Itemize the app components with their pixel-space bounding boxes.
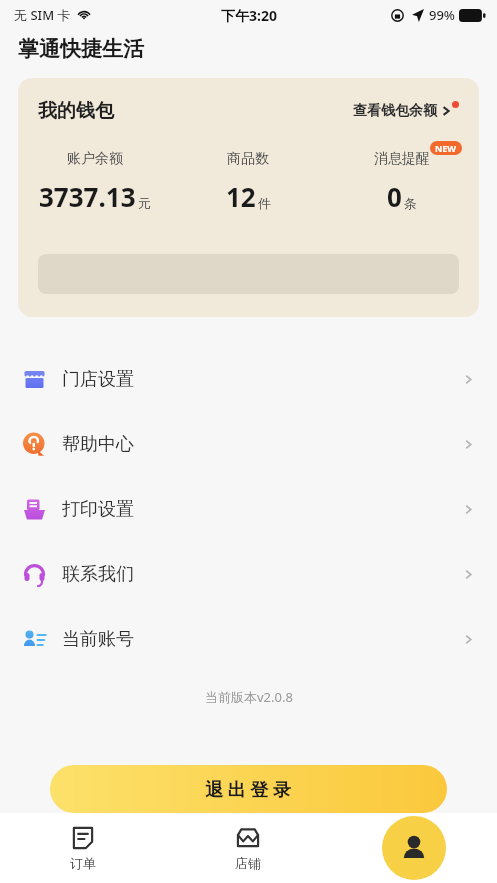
staticText: 联系我们 bbox=[62, 563, 134, 586]
staticText: 掌通快捷生活 bbox=[18, 36, 144, 62]
staticText: 元 bbox=[138, 195, 151, 211]
staticText: 当前版本v2.0.8 bbox=[205, 688, 293, 706]
staticText: 件 bbox=[258, 195, 271, 211]
staticText: 无 SIM 卡 bbox=[14, 6, 71, 24]
staticText: 条 bbox=[404, 195, 417, 211]
button[interactable]: 联系我们 bbox=[0, 542, 497, 607]
button[interactable]: 查看钱包余额 bbox=[349, 98, 463, 124]
staticText: 3737.13 bbox=[39, 179, 136, 214]
staticText: 店铺 bbox=[235, 855, 261, 871]
staticText: 下午3:20 bbox=[221, 6, 277, 25]
button[interactable]: 帮助中心 bbox=[0, 412, 497, 477]
staticText: 99% bbox=[429, 6, 455, 24]
staticText: 12 bbox=[226, 179, 256, 214]
staticText: 0 bbox=[387, 179, 402, 214]
staticText: 消息提醒 bbox=[374, 150, 430, 168]
button[interactable]: 退 出 登 录 bbox=[50, 765, 447, 813]
button[interactable]: 订单 bbox=[0, 813, 165, 883]
button[interactable]: 我的钱包 bbox=[18, 78, 479, 317]
button[interactable]: 我的 bbox=[382, 816, 446, 880]
staticText: NEW bbox=[435, 142, 457, 154]
staticText: 我的钱包 bbox=[38, 99, 114, 123]
staticText: 门店设置 bbox=[62, 368, 134, 391]
staticText: 打印设置 bbox=[62, 498, 134, 521]
staticText: 帮助中心 bbox=[62, 433, 134, 456]
button[interactable]: 当前账号 bbox=[0, 607, 497, 672]
staticText: 订单 bbox=[70, 855, 96, 871]
button[interactable]: 打印设置 bbox=[0, 477, 497, 542]
staticText: 退 出 登 录 bbox=[205, 777, 292, 802]
staticText: 当前账号 bbox=[62, 628, 134, 651]
button[interactable]: 门店设置 bbox=[0, 347, 497, 412]
staticText: 查看钱包余额 bbox=[353, 102, 437, 120]
button[interactable]: 店铺 bbox=[165, 813, 331, 883]
staticText: 商品数 bbox=[227, 150, 269, 168]
staticText: 账户余额 bbox=[67, 150, 123, 168]
